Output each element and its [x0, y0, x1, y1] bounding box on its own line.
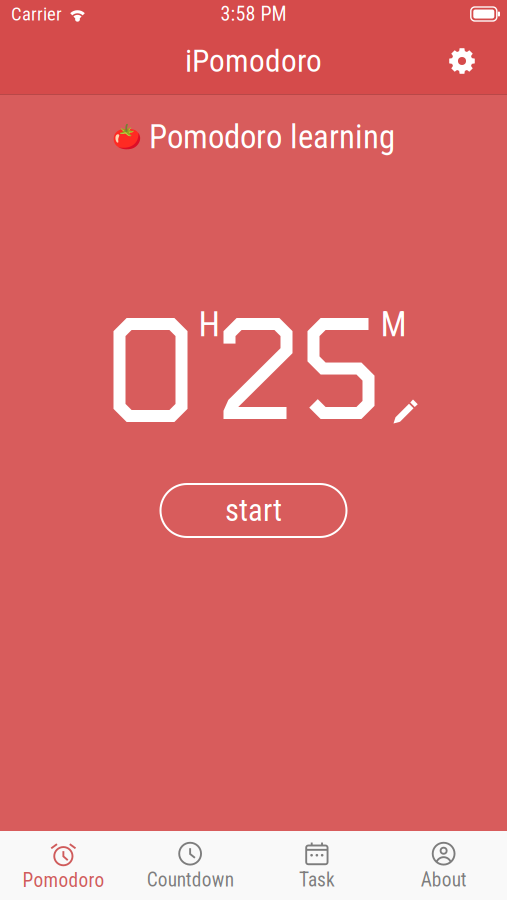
button[interactable]: Pomodoro — [0, 828, 127, 900]
staticText: iPomodoro — [185, 43, 322, 79]
staticText: M — [380, 304, 406, 345]
button[interactable]: Countdown — [127, 829, 254, 900]
button[interactable]: About — [380, 829, 507, 900]
button[interactable]: Settings — [435, 37, 507, 85]
staticText: Pomodoro learning — [149, 118, 395, 156]
button[interactable]: Edit duration — [387, 422, 424, 459]
staticText: Countdown — [147, 869, 234, 891]
staticText: Carrier — [11, 3, 62, 25]
staticText: About — [421, 869, 467, 891]
staticText: Pomodoro — [22, 869, 104, 892]
staticText: 3:58 PM — [220, 2, 286, 26]
staticText: 🍅 — [112, 123, 142, 151]
button[interactable]: start — [160, 484, 346, 537]
staticText: H — [198, 304, 219, 345]
staticText: start — [225, 492, 282, 528]
button[interactable]: Task — [253, 829, 380, 900]
staticText: Task — [299, 869, 335, 891]
